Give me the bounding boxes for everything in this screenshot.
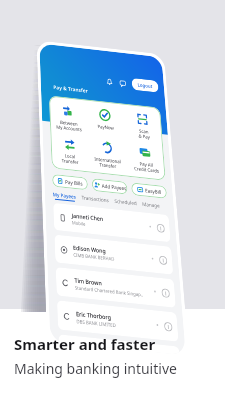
staticText: Standard Chartered Bank Singap.. xyxy=(29,230,96,236)
button[interactable]: Add Payees xyxy=(51,131,87,143)
button[interactable]: My Payees xyxy=(11,147,35,155)
staticText: Smarter and faster xyxy=(14,334,156,354)
button[interactable]: Transactions xyxy=(40,147,68,155)
staticText: Janneti Chen xyxy=(29,164,61,171)
staticText: CIMB BANK BERHAD xyxy=(29,201,70,207)
button[interactable]: Local Transfer xyxy=(11,94,49,120)
staticText: My Payees xyxy=(11,147,35,153)
staticText: International Transfer xyxy=(55,109,82,120)
staticText: Pay Bills xyxy=(24,134,42,140)
staticText: Making banking intuitive xyxy=(14,359,177,378)
staticText: Between My Accounts xyxy=(17,77,44,88)
staticText: Scan & Pay xyxy=(102,77,114,88)
button[interactable]: Edison Wong xyxy=(11,187,127,212)
button[interactable]: Between My Accounts xyxy=(11,62,49,88)
button[interactable]: EasyBill xyxy=(91,131,127,143)
button[interactable]: International Transfer xyxy=(49,94,88,120)
staticText: Mobile xyxy=(29,172,43,178)
button[interactable]: Janneti Chen xyxy=(11,158,127,183)
staticText: Scheduled xyxy=(73,147,96,153)
button[interactable]: Pay Bills xyxy=(11,131,47,143)
button[interactable]: Tim Brown xyxy=(11,216,127,241)
staticText: Pay & Transfer xyxy=(16,43,52,50)
staticText: Manage xyxy=(101,147,119,153)
button[interactable]: Scheduled xyxy=(73,147,96,155)
staticText: DBS BANK LIMITED xyxy=(29,259,67,265)
button[interactable]: PayNow xyxy=(49,62,88,83)
staticText: Tim Brown xyxy=(29,222,56,229)
staticText: Edison Wong xyxy=(29,193,62,200)
button[interactable]: Manage xyxy=(101,147,119,155)
staticText: Pay All Credit Cards xyxy=(95,109,121,120)
button[interactable]: Pay All Credit Cards xyxy=(88,94,127,120)
button[interactable]: Sarah Lim xyxy=(11,274,127,281)
staticText: Transactions xyxy=(40,147,68,153)
staticText: Sarah Lim xyxy=(29,280,54,281)
button[interactable]: Eric Thorborg xyxy=(11,245,127,270)
staticText: Eric Thorborg xyxy=(29,251,63,258)
button[interactable]: Scan & Pay xyxy=(88,62,127,88)
staticText: Local Transfer xyxy=(21,109,39,120)
